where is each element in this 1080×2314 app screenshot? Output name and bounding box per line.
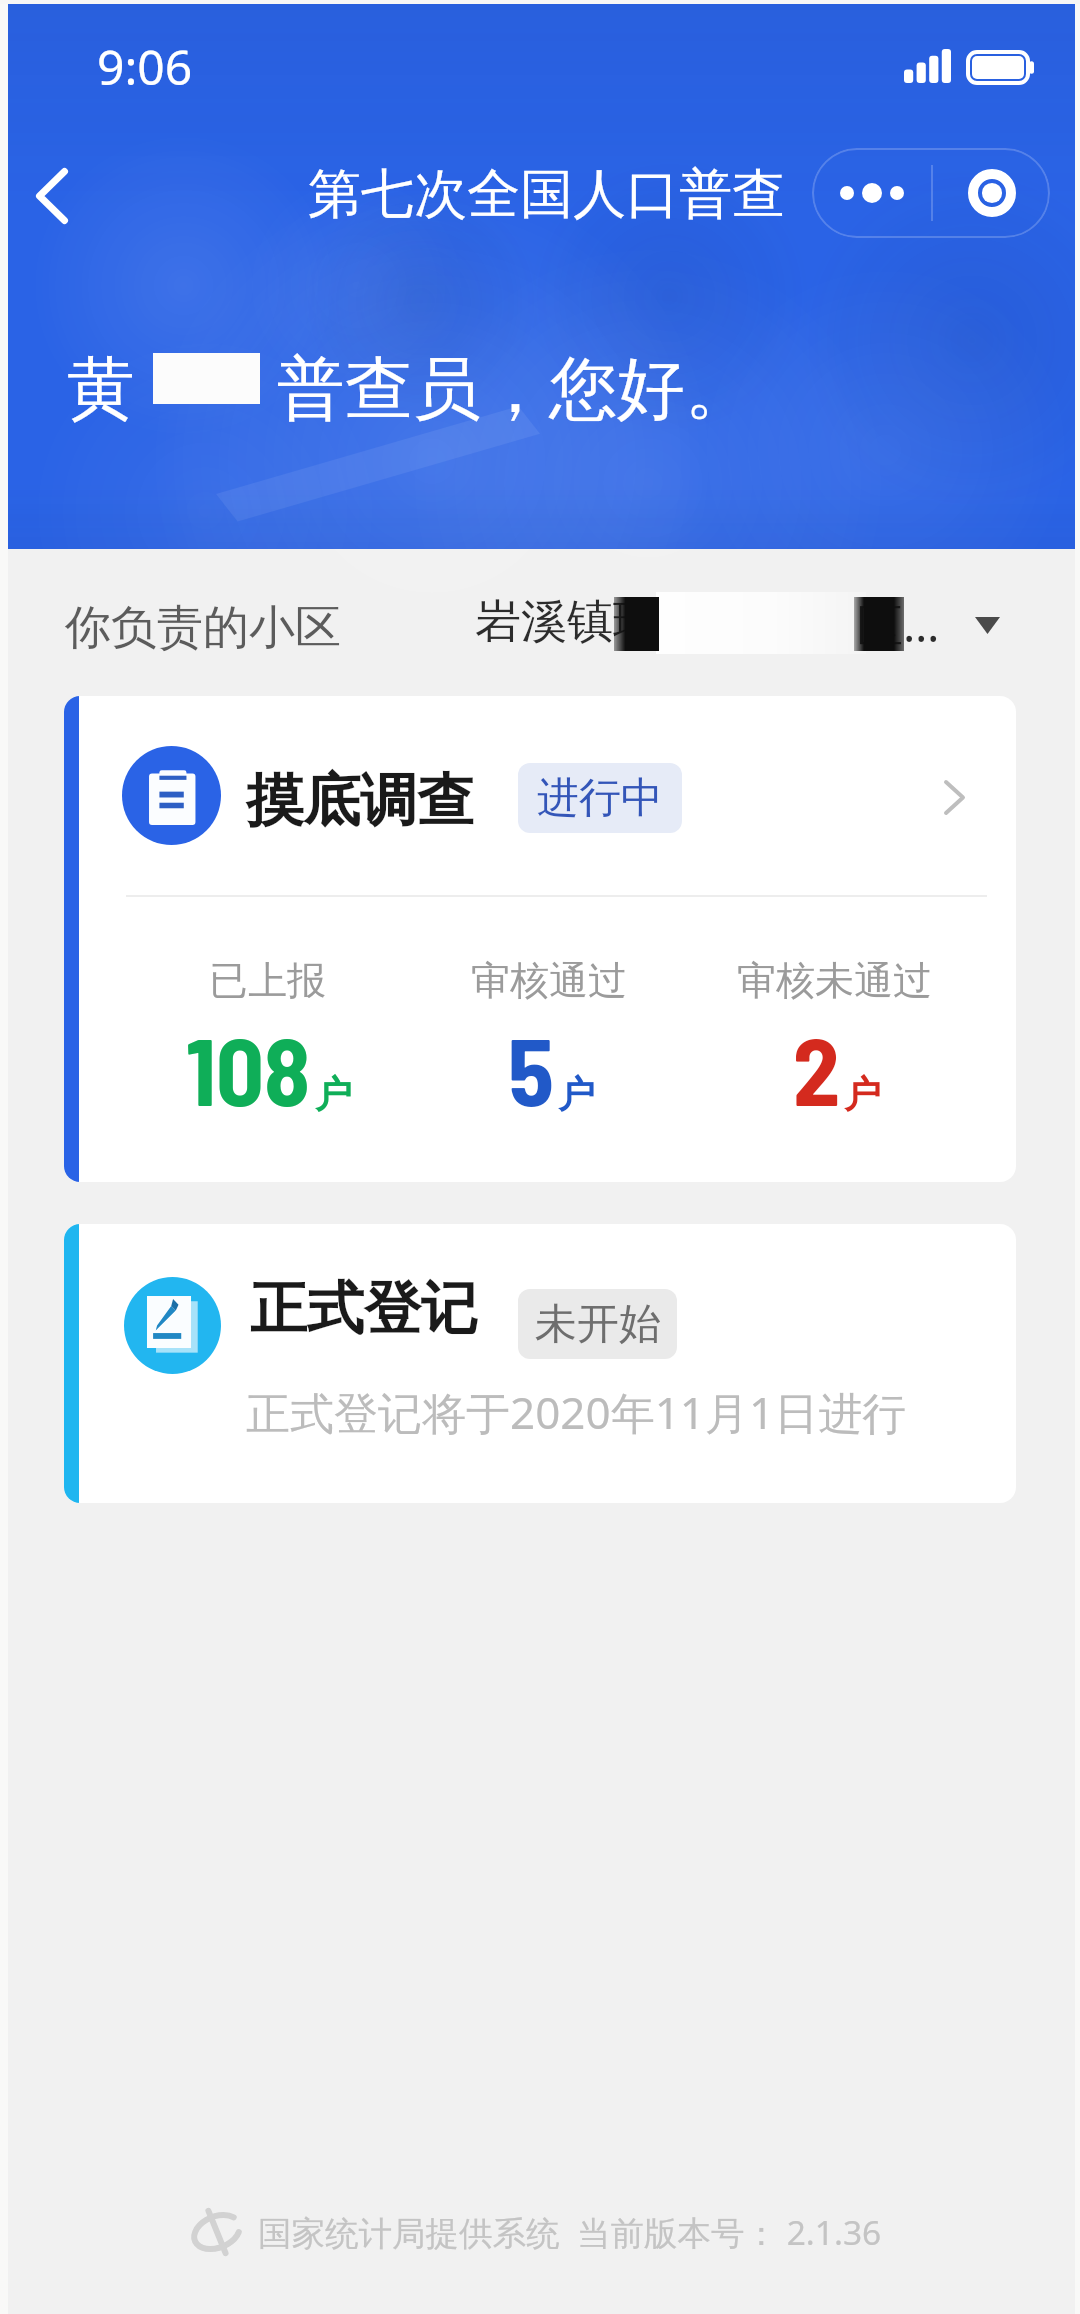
staticText: 户 bbox=[315, 1071, 352, 1118]
staticText: 区… bbox=[857, 593, 940, 656]
staticText: 5 bbox=[508, 1012, 554, 1125]
staticText: 已上报 bbox=[209, 956, 326, 1005]
staticText: 黄 bbox=[67, 347, 135, 433]
staticText: 你负责的小区 bbox=[65, 599, 341, 657]
staticText: 第七次全国人口普查 bbox=[308, 161, 785, 228]
staticText: 户 bbox=[558, 1071, 595, 1118]
button[interactable]: 摸底调查 bbox=[64, 696, 1016, 1182]
button[interactable]: 正式登记 bbox=[64, 1224, 1016, 1503]
staticText: 正式登记将于2020年11月1日进行 bbox=[246, 1382, 907, 1442]
staticText: 户 bbox=[844, 1071, 881, 1118]
staticText: 2 bbox=[793, 1012, 840, 1125]
staticText: 9:06 bbox=[97, 34, 193, 99]
staticText: 正式登记 bbox=[250, 1273, 478, 1345]
staticText: 108 bbox=[186, 1012, 311, 1125]
button[interactable]: Back bbox=[4, 148, 100, 244]
staticText: 摸底调查 bbox=[246, 765, 474, 837]
staticText: 审核通过 bbox=[471, 956, 627, 1005]
button[interactable]: More options bbox=[812, 148, 931, 238]
button[interactable]: 岩溪镇理 bbox=[466, 578, 1011, 670]
staticText: 国家统计局提供系统 当前版本号： 2.1.36 bbox=[258, 2209, 882, 2255]
staticText: 普查员，您好。 bbox=[277, 347, 753, 433]
staticText: 岩溪镇理 bbox=[475, 593, 659, 651]
staticText: 未开始 bbox=[535, 1298, 661, 1351]
staticText: 审核未通过 bbox=[737, 956, 932, 1005]
staticText: 进行中 bbox=[537, 772, 663, 825]
button[interactable]: Close mini program bbox=[933, 148, 1050, 238]
